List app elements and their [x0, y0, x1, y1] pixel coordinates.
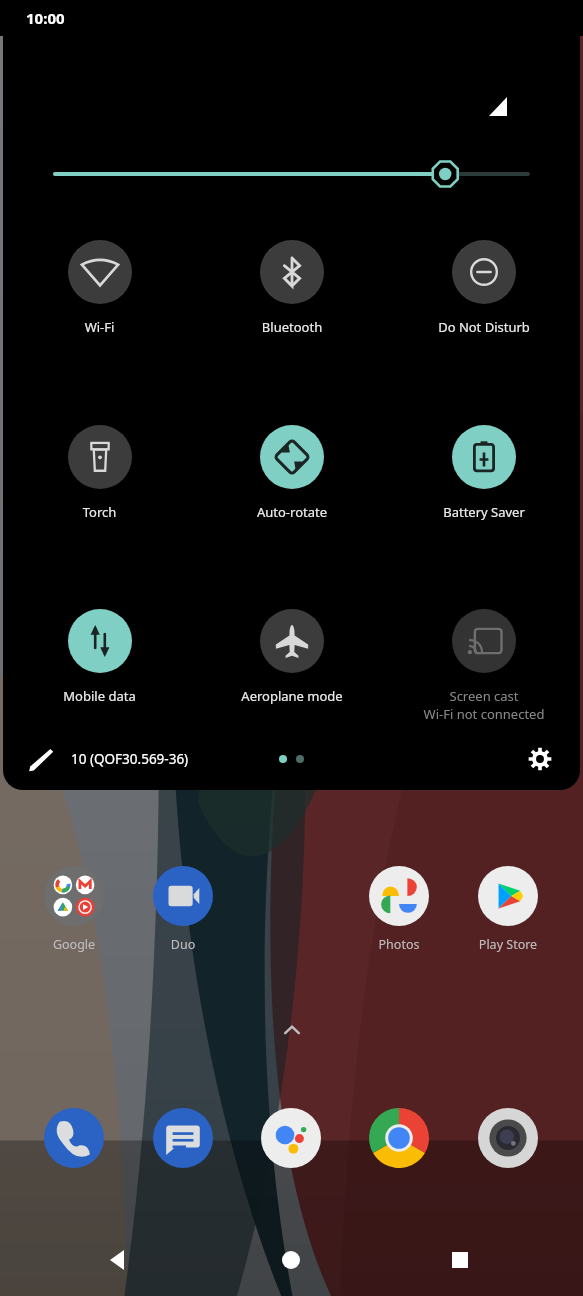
staticText: Play Store [454, 936, 562, 953]
staticText: Do Not Disturb [388, 318, 580, 336]
button[interactable]: Screen cast [388, 607, 580, 725]
other: Signal [487, 93, 511, 117]
staticText: Aeroplane mode [196, 687, 388, 705]
staticText: Wi-Fi [3, 318, 196, 336]
staticText: Bluetooth [196, 318, 388, 336]
staticText: Auto-rotate [196, 503, 388, 521]
button[interactable]: Edit [23, 741, 59, 777]
button[interactable]: Bluetooth [196, 238, 388, 338]
staticText: Screen cast [388, 687, 580, 705]
button[interactable]: Photos [345, 866, 453, 953]
staticText: Google [20, 936, 128, 953]
staticText: Wi-Fi not connected [388, 705, 580, 723]
button[interactable]: Wi-Fi [3, 238, 196, 338]
button[interactable]: App [44, 1108, 104, 1168]
button[interactable]: Aeroplane mode [196, 607, 388, 707]
staticText: Torch [3, 503, 196, 521]
button[interactable]: Mobile data [3, 607, 196, 707]
button[interactable]: Duo [129, 866, 237, 953]
button[interactable]: App [261, 1108, 321, 1168]
staticText: Mobile data [3, 687, 196, 705]
staticText: 10 (QOF30.569-36) [71, 750, 189, 768]
button[interactable]: App [478, 1108, 538, 1168]
button[interactable]: Battery Saver [388, 423, 580, 523]
button[interactable]: App [369, 1108, 429, 1168]
button[interactable]: Settings [522, 741, 558, 777]
button[interactable]: Brightness [55, 154, 528, 194]
button[interactable]: Back [98, 1240, 138, 1280]
button[interactable]: Play Store [454, 866, 562, 953]
button[interactable]: Auto-rotate [196, 423, 388, 523]
staticText: Battery Saver [388, 503, 580, 521]
staticText: Photos [345, 936, 453, 953]
staticText: 10:00 [26, 8, 65, 28]
button[interactable]: Home [271, 1240, 311, 1280]
staticText: Duo [129, 936, 237, 953]
button[interactable]: Recents [440, 1240, 480, 1280]
button[interactable]: App [153, 1108, 213, 1168]
button[interactable]: Do Not Disturb [388, 238, 580, 338]
button[interactable]: Google [20, 866, 128, 953]
button[interactable]: Torch [3, 423, 196, 523]
